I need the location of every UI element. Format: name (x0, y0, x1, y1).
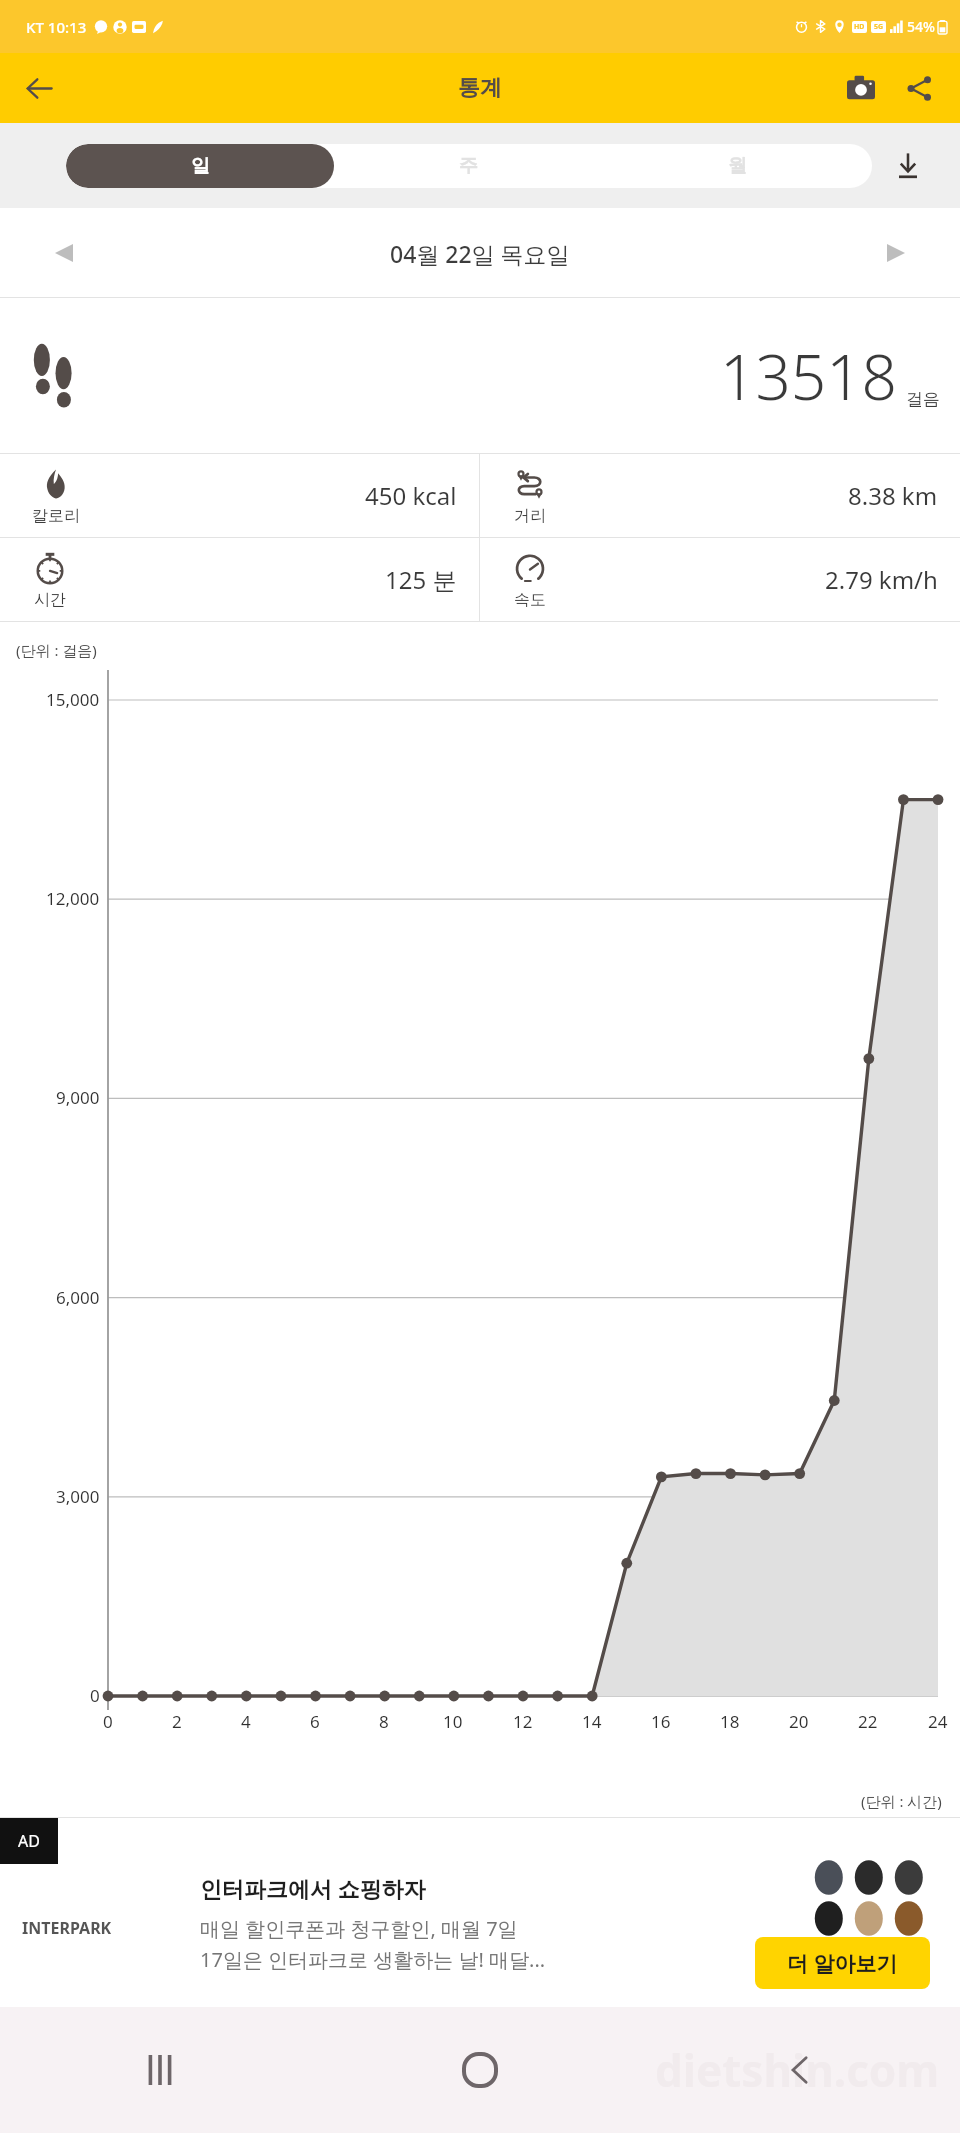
staticText: 15,000 (46, 688, 100, 711)
staticText: 54% (907, 17, 935, 36)
staticText: 일 (191, 154, 210, 178)
staticText: 10 (443, 1710, 463, 1733)
staticText: 12 (513, 1710, 533, 1733)
staticText: 22 (858, 1710, 878, 1733)
button[interactable]: 시간 (0, 538, 479, 621)
staticText: 0 (103, 1710, 113, 1733)
staticText: 8.38 km (848, 479, 938, 512)
button[interactable]: 거리 (480, 454, 960, 537)
button[interactable]: AD (0, 1817, 960, 2007)
staticText: KT 10:13 (26, 17, 87, 37)
staticText: 6,000 (56, 1286, 100, 1309)
staticText: 17일은 인터파크로 생활하는 날! 매달... (200, 1946, 546, 1973)
button[interactable]: 속도 (480, 538, 960, 621)
staticText: 거리 (514, 506, 546, 526)
staticText: 450 kcal (365, 479, 457, 512)
staticText: (단위 : 걸음) (16, 640, 97, 660)
button[interactable]: 칼로리 (0, 454, 479, 537)
staticText: 20 (789, 1710, 809, 1733)
button[interactable]: Back (755, 2025, 845, 2115)
button[interactable]: Back (14, 63, 64, 113)
staticText: 125 분 (385, 563, 457, 596)
staticText: HD (854, 22, 865, 32)
staticText: 칼로리 (32, 506, 80, 526)
button[interactable]: Camera (836, 63, 886, 113)
button[interactable]: 일 (66, 144, 334, 188)
staticText: 0 (90, 1684, 100, 1707)
staticText: 월 (728, 154, 747, 178)
button[interactable]: Home (435, 2025, 525, 2115)
staticText: 16 (651, 1710, 671, 1733)
staticText: 04월 22일 목요일 (390, 238, 570, 269)
button[interactable]: Next day (870, 227, 922, 279)
staticText: 9,000 (56, 1086, 100, 1109)
staticText: 2.79 km/h (825, 563, 938, 596)
button[interactable]: 더 알아보기 (755, 1937, 930, 1989)
staticText: 더 알아보기 (787, 1949, 898, 1978)
staticText: 주 (459, 154, 478, 178)
staticText: 2 (172, 1710, 182, 1733)
staticText: 시간 (34, 590, 66, 610)
staticText: INTERPARK (22, 1917, 112, 1939)
staticText: 3,000 (56, 1485, 100, 1508)
staticText: 6 (310, 1710, 320, 1733)
staticText: 통계 (458, 74, 502, 102)
staticText: 4 (241, 1710, 251, 1733)
staticText: 14 (582, 1710, 602, 1733)
button[interactable]: Recents (115, 2025, 205, 2115)
button[interactable]: Download (872, 138, 944, 194)
button[interactable]: Previous day (38, 227, 90, 279)
staticText: 5G (874, 22, 884, 32)
staticText: 걸음 (906, 389, 940, 410)
button[interactable]: Share (894, 63, 944, 113)
button[interactable]: 월 (603, 144, 872, 188)
staticText: 24 (928, 1710, 948, 1733)
staticText: 12,000 (46, 887, 100, 910)
staticText: dietshin.com (655, 2040, 940, 2100)
staticText: 매일 할인쿠폰과 청구할인, 매월 7일 (200, 1915, 518, 1942)
staticText: 13518 (720, 334, 898, 418)
staticText: (단위 : 시간) (861, 1791, 942, 1811)
staticText: 18 (720, 1710, 740, 1733)
staticText: AD (18, 1830, 40, 1852)
staticText: 속도 (514, 590, 546, 610)
staticText: 8 (379, 1710, 389, 1733)
staticText: 인터파크에서 쇼핑하자 (200, 1873, 426, 1903)
